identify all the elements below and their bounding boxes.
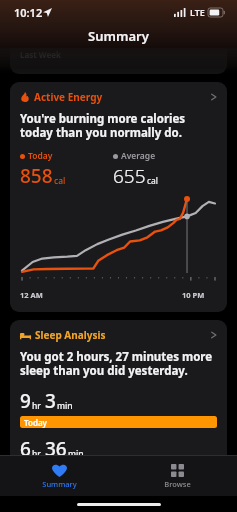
- button[interactable]: Show All Highlights: [10, 496, 227, 512]
- staticText: min: [57, 400, 73, 412]
- staticText: hr: [32, 448, 41, 460]
- staticText: Average: [121, 150, 156, 162]
- button[interactable]: Sleep Analysis: [10, 320, 227, 488]
- staticText: LTE: [190, 6, 205, 18]
- staticText: Yesterday: [24, 465, 63, 476]
- staticText: 6: [20, 436, 31, 462]
- staticText: 12 AM: [20, 290, 43, 300]
- staticText: Summary: [42, 479, 77, 489]
- staticText: You got 2 hours, 27 minutes more sleep t…: [20, 349, 217, 379]
- staticText: 10 PM: [182, 290, 205, 300]
- staticText: 10:12: [14, 5, 43, 20]
- staticText: hr: [32, 400, 41, 412]
- staticText: Today: [28, 150, 53, 162]
- staticText: 655: [113, 163, 146, 189]
- staticText: 9: [20, 388, 31, 414]
- staticText: Today: [24, 417, 47, 428]
- staticText: Sleep Analysis: [35, 328, 106, 342]
- staticText: Last Week: [20, 49, 61, 60]
- staticText: Browse: [164, 479, 191, 489]
- staticText: 858: [20, 163, 53, 189]
- staticText: 36: [45, 436, 67, 462]
- staticText: You're burning more calories today than …: [20, 111, 217, 141]
- staticText: cal: [54, 175, 66, 187]
- button[interactable]: Active Energy: [10, 82, 227, 312]
- button[interactable]: Summary: [0, 456, 118, 496]
- staticText: Summary: [88, 27, 149, 45]
- staticText: 3: [45, 388, 56, 414]
- staticText: cal: [147, 175, 159, 187]
- staticText: Active Energy: [34, 90, 103, 104]
- button[interactable]: Browse: [118, 456, 237, 496]
- staticText: min: [68, 448, 84, 460]
- staticText: Show All Highlights: [20, 502, 122, 506]
